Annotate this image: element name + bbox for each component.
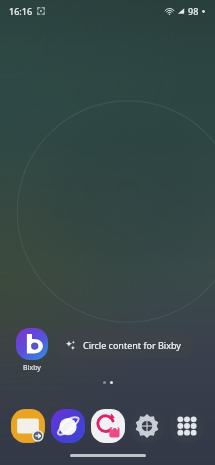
button[interactable]: Settings <box>130 409 164 443</box>
button[interactable]: Apps <box>170 409 204 443</box>
button[interactable]: Circle content for Bixby <box>56 332 193 358</box>
staticText: Bixby <box>23 363 41 373</box>
button[interactable]: Bixby <box>10 326 54 375</box>
button[interactable]: Internet <box>51 409 85 443</box>
staticText: Circle content for Bixby <box>83 339 181 351</box>
other: Bixby <box>16 328 48 360</box>
staticText: 98 <box>188 5 199 17</box>
button[interactable]: My Files <box>11 409 45 443</box>
staticText: 16:16 <box>9 5 33 17</box>
button[interactable]: Galaxy Store <box>91 409 125 443</box>
